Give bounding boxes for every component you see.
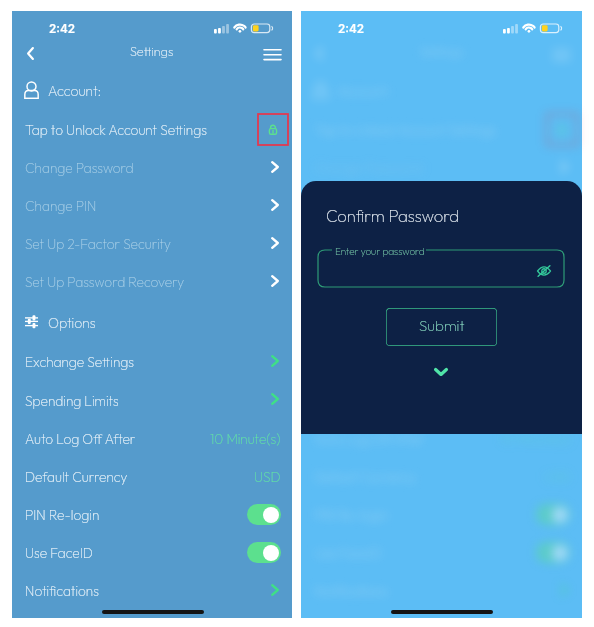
staticText: Auto Log Off After [25, 430, 136, 447]
button[interactable]: Exchange Settings [301, 343, 582, 379]
button[interactable]: Unlock account settings [547, 114, 577, 145]
button[interactable]: Unlock account settings [258, 114, 288, 145]
button[interactable]: Change PIN [301, 187, 582, 223]
staticText: Confirm Password [326, 205, 459, 226]
button[interactable]: Change Password [301, 149, 582, 185]
staticText: Set Up Password Recovery [25, 273, 184, 290]
staticText: Change PIN [25, 197, 97, 214]
staticText: Set Up 2-Factor Security [314, 235, 460, 252]
staticText: Spending Limits [25, 392, 119, 409]
button[interactable]: Set Up 2-Factor Security [12, 225, 292, 261]
button[interactable]: Use FaceID [301, 534, 582, 570]
button[interactable]: Back [306, 40, 332, 66]
staticText: Use FaceID [25, 544, 93, 561]
button[interactable]: Toggle [536, 504, 570, 525]
staticText: Tap to Unlock Account Settings [25, 121, 207, 138]
button[interactable]: Submit [386, 308, 497, 346]
button[interactable]: Spending Limits [12, 382, 292, 418]
button[interactable]: Default Currency [12, 458, 292, 494]
button[interactable]: Set Up 2-Factor Security [301, 225, 582, 261]
staticText: USD [254, 468, 281, 485]
staticText: 2:42 [338, 22, 365, 36]
button[interactable]: Menu [547, 45, 576, 65]
button[interactable]: Show password [533, 260, 555, 282]
staticText: 10 Minute(s) [210, 430, 281, 447]
staticText: Settings [130, 43, 174, 59]
button[interactable]: Toggle [247, 504, 281, 525]
button[interactable]: Toggle [247, 542, 281, 563]
staticText: Account: [48, 82, 102, 100]
button[interactable]: Back [17, 40, 43, 66]
staticText: Change PIN [314, 197, 386, 214]
button[interactable]: Tap to Unlock Account Settings [301, 111, 582, 147]
button[interactable]: Change PIN [12, 187, 292, 223]
staticText: Set Up 2-Factor Security [25, 235, 171, 252]
staticText: Exchange Settings [25, 353, 134, 370]
staticText: Enter your password [335, 245, 425, 257]
staticText: Submit [419, 316, 465, 335]
button[interactable]: Toggle [536, 542, 570, 563]
button[interactable]: Set Up Password Recovery [301, 263, 582, 299]
button[interactable]: Exchange Settings [12, 343, 292, 379]
staticText: Auto Log Off After [314, 430, 425, 447]
staticText: Change Password [25, 159, 134, 176]
button[interactable]: PIN Re-login [301, 496, 582, 532]
staticText: PIN Re-login [25, 506, 100, 523]
button[interactable]: Set Up Password Recovery [12, 263, 292, 299]
staticText: 10 Minute(s) [500, 430, 571, 447]
button[interactable]: Change Password [12, 149, 292, 185]
button[interactable]: Menu [258, 45, 287, 65]
button[interactable]: PIN Re-login [12, 496, 292, 532]
button[interactable]: Tap to Unlock Account Settings [12, 111, 292, 147]
staticText: 2:42 [49, 22, 76, 36]
button[interactable]: Auto Log Off After [301, 420, 582, 456]
staticText: Set Up Password Recovery [314, 273, 473, 290]
button[interactable]: Collapse [427, 360, 455, 384]
button[interactable]: Use FaceID [12, 534, 292, 570]
staticText: Default Currency [25, 468, 128, 485]
staticText: Options [48, 314, 96, 332]
button[interactable]: Auto Log Off After [12, 420, 292, 456]
button[interactable]: Notifications [12, 572, 292, 608]
staticText: Notifications [25, 582, 99, 599]
